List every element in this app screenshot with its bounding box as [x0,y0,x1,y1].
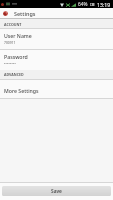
staticText: User Name [4,32,32,39]
button[interactable]: Password [0,50,113,70]
staticText: 700911 [4,40,16,44]
other: Settings app icon [3,11,8,16]
button[interactable]: Save [2,186,111,196]
staticText: 13:19 [97,1,111,8]
staticText: ADVANCED [4,72,24,77]
button[interactable]: User Name [0,29,113,50]
staticText: Save [51,188,62,195]
staticText: ACCOUNT [4,22,22,27]
staticText: 64% [78,1,88,8]
staticText: Settings [14,10,36,17]
staticText: Password [4,53,28,60]
button[interactable]: More Settings [0,80,113,99]
staticText: More Settings [4,87,39,94]
